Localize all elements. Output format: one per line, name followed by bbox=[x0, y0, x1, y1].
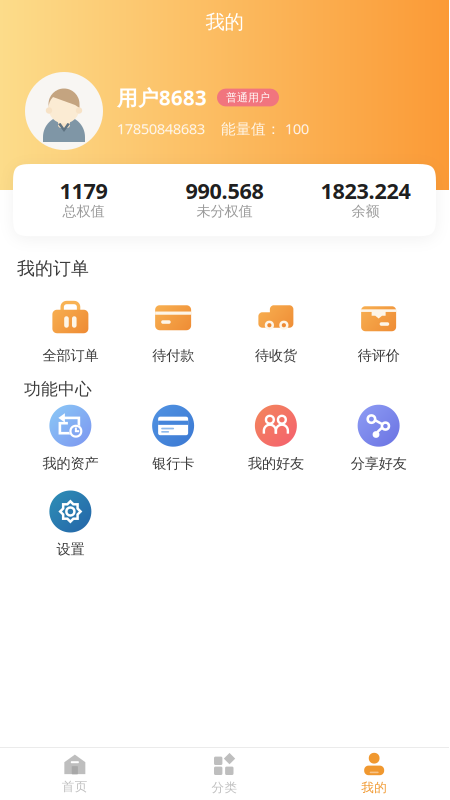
staticText: 990.568 bbox=[185, 176, 263, 205]
button[interactable]: 我的 bbox=[299, 753, 449, 795]
button[interactable]: 银行卡 bbox=[122, 405, 225, 472]
button[interactable]: 首页 bbox=[0, 754, 150, 794]
staticText: 我的 bbox=[205, 10, 243, 34]
staticText: 1823.224 bbox=[320, 176, 410, 205]
staticText: 未分权值 bbox=[196, 202, 252, 220]
staticText: 用户8683 bbox=[117, 83, 207, 111]
button[interactable]: 全部订单 bbox=[19, 302, 122, 364]
staticText: 余额 bbox=[351, 202, 379, 220]
staticText: 我的资产 bbox=[42, 455, 98, 472]
staticText: 我的 bbox=[361, 780, 387, 795]
staticText: 普通用户 bbox=[226, 91, 270, 104]
staticText: 17850848683 bbox=[117, 118, 205, 138]
staticText: 分类 bbox=[211, 780, 237, 795]
staticText: 银行卡 bbox=[152, 455, 194, 472]
staticText: 待评价 bbox=[358, 347, 400, 364]
staticText: 我的好友 bbox=[248, 455, 304, 472]
staticText: 总权值 bbox=[62, 202, 104, 220]
staticText: 我的订单 bbox=[17, 257, 89, 280]
button[interactable]: 分享好友 bbox=[327, 405, 430, 472]
button[interactable]: 设置 bbox=[19, 490, 122, 558]
staticText: 能量值： 100 bbox=[221, 118, 309, 138]
button[interactable]: 我的 bbox=[0, 0, 449, 44]
staticText: 全部订单 bbox=[42, 347, 98, 364]
button[interactable]: 我的好友 bbox=[224, 405, 327, 472]
button[interactable]: 分类 bbox=[150, 753, 299, 795]
staticText: 设置 bbox=[56, 540, 84, 558]
button[interactable]: 待评价 bbox=[327, 302, 430, 364]
staticText: 首页 bbox=[62, 779, 88, 794]
staticText: 功能中心 bbox=[24, 378, 92, 400]
button[interactable]: 我的资产 bbox=[19, 405, 122, 472]
button[interactable]: 待付款 bbox=[122, 302, 225, 364]
staticText: 待收货 bbox=[255, 347, 297, 364]
staticText: 待付款 bbox=[152, 347, 194, 364]
staticText: 1179 bbox=[59, 176, 107, 205]
staticText: 分享好友 bbox=[351, 455, 407, 472]
button[interactable]: 待收货 bbox=[224, 302, 327, 364]
